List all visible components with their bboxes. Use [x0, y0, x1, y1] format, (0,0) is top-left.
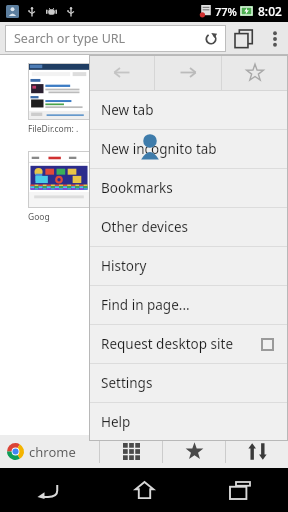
button[interactable]: [28, 63, 90, 120]
button[interactable]: Bookmarks: [163, 435, 225, 468]
button[interactable]: Recents: [192, 468, 288, 512]
button[interactable]: New tab: [89, 91, 288, 129]
staticText: Settings: [101, 374, 288, 392]
button[interactable]: Back: [89, 55, 154, 90]
button[interactable]: Sync: [226, 435, 288, 468]
staticText: Search or type URL: [14, 30, 196, 47]
button[interactable]: Search or type URL: [5, 25, 226, 52]
staticText: Bookmarks: [101, 179, 288, 197]
button[interactable]: Back: [0, 468, 96, 512]
staticText: History: [101, 257, 288, 275]
staticText: New incognito tab: [101, 140, 288, 158]
button[interactable]: Bookmarks: [89, 169, 288, 207]
button[interactable]: Apps: [100, 435, 162, 468]
button[interactable]: [28, 151, 90, 208]
staticText: Find in page...: [101, 296, 288, 314]
button[interactable]: New incognito tab: [89, 130, 288, 168]
staticText: Request desktop site: [101, 335, 261, 353]
button[interactable]: Bookmark: [222, 55, 288, 90]
staticText: Other devices: [101, 218, 288, 236]
button[interactable]: Request desktop site: [89, 325, 288, 363]
staticText: New tab: [101, 101, 288, 119]
button[interactable]: Home: [96, 468, 192, 512]
button[interactable]: Find in page...: [89, 286, 288, 324]
button[interactable]: Reload: [196, 25, 226, 52]
button[interactable]: Forward: [155, 55, 221, 90]
button[interactable]: chrome: [0, 435, 99, 468]
button[interactable]: Settings: [89, 364, 288, 402]
button[interactable]: Help: [89, 403, 288, 441]
button[interactable]: History: [89, 247, 288, 285]
staticText: 77%: [215, 4, 237, 19]
staticText: Help: [101, 413, 288, 431]
staticText: chrome: [29, 443, 76, 461]
button[interactable]: Tabs: [226, 22, 262, 55]
button[interactable]: More options: [262, 22, 288, 55]
staticText: FileDir.com: .: [28, 123, 94, 135]
button[interactable]: Other devices: [89, 208, 288, 246]
staticText: Goog: [28, 211, 94, 223]
staticText: 8:02: [258, 3, 282, 19]
